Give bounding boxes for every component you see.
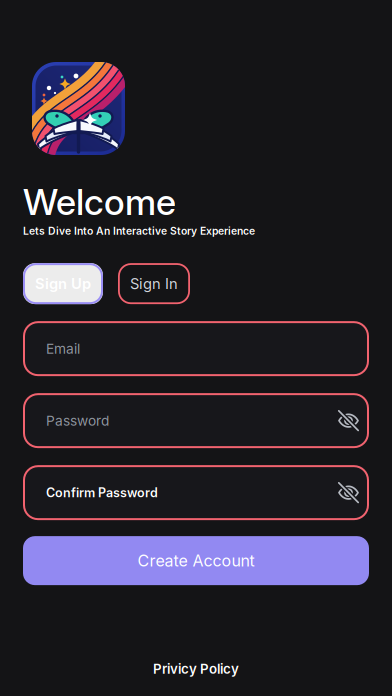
- staticText: Confirm Password: [46, 485, 158, 500]
- button[interactable]: Create Account: [23, 536, 369, 585]
- button[interactable]: Sign In: [118, 263, 190, 304]
- staticText: Create Account: [137, 551, 254, 570]
- staticText: Welcome: [23, 180, 176, 224]
- button[interactable]: Sign Up: [23, 263, 103, 304]
- button[interactable]: Show Password: [330, 412, 359, 430]
- staticText: Email: [46, 340, 80, 357]
- staticText: Sign In: [130, 275, 178, 292]
- staticText: Privicy Policy: [153, 661, 239, 677]
- button[interactable]: Show Confirm Password: [330, 484, 359, 502]
- staticText: Password: [46, 412, 109, 429]
- staticText: Sign Up: [35, 275, 91, 292]
- staticText: Lets Dive Into An Interactive Story Expe…: [23, 225, 255, 237]
- button[interactable]: Privicy Policy: [0, 661, 392, 677]
